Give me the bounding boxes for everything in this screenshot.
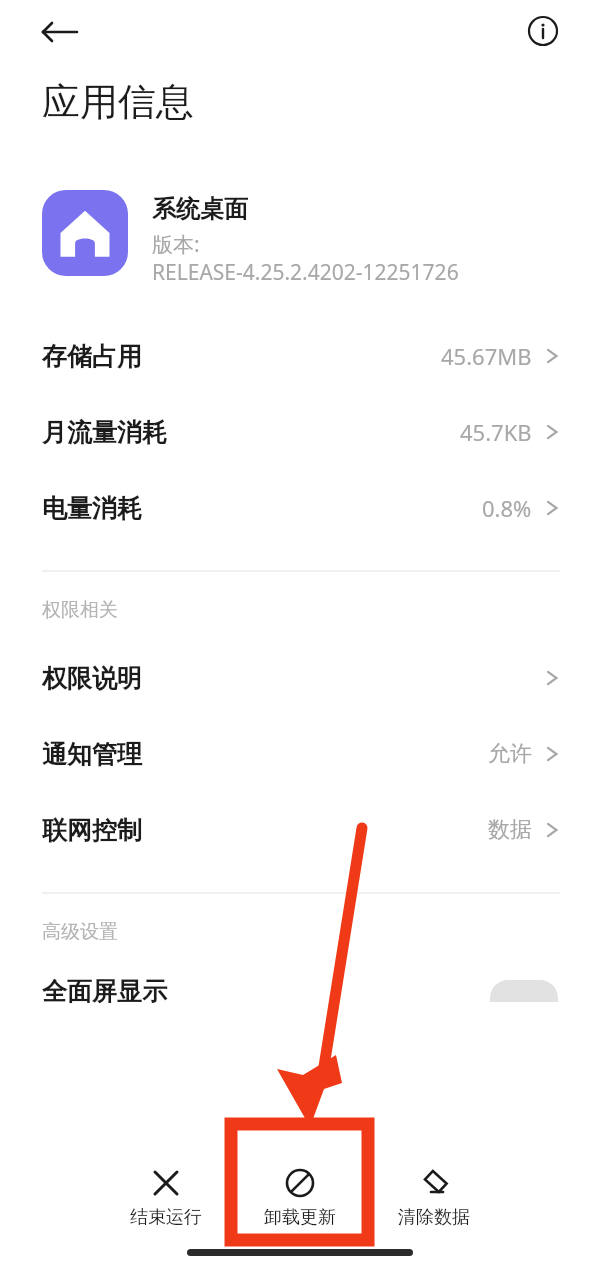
staticText: 联网控制 — [42, 815, 142, 846]
button[interactable]: 清除数据 — [388, 1164, 480, 1233]
staticText: 清除数据 — [398, 1206, 470, 1229]
staticText: 通知管理 — [42, 739, 142, 770]
staticText: 应用信息 — [42, 78, 194, 126]
staticText: 权限相关 — [42, 598, 118, 622]
button[interactable]: 系统桌面 — [42, 190, 558, 286]
button[interactable]: 权限说明 — [0, 640, 600, 716]
staticText: 0.8% — [482, 493, 532, 523]
button[interactable]: 电量消耗 — [0, 470, 600, 546]
button[interactable]: 联网控制 — [0, 792, 600, 868]
staticText: 高级设置 — [42, 920, 118, 944]
staticText: 45.67MB — [441, 341, 532, 371]
staticText: 权限说明 — [42, 663, 142, 694]
staticText: 月流量消耗 — [42, 417, 167, 448]
button[interactable]: 全面屏显示 — [0, 962, 600, 1020]
staticText: 全面屏显示 — [42, 976, 167, 1007]
button[interactable]: 结束运行 — [120, 1164, 212, 1233]
staticText: 卸载更新 — [264, 1206, 336, 1229]
button[interactable]: 月流量消耗 — [0, 394, 600, 470]
button[interactable]: 通知管理 — [0, 716, 600, 792]
button[interactable]: Info — [519, 7, 567, 55]
staticText: 电量消耗 — [42, 493, 142, 524]
button[interactable]: Back — [36, 8, 84, 56]
button[interactable]: 卸载更新 — [254, 1164, 346, 1233]
button[interactable]: 存储占用 — [0, 318, 600, 394]
staticText: 允许 — [488, 740, 532, 768]
staticText: 结束运行 — [130, 1206, 202, 1229]
staticText: 版本: RELEASE-4.25.2.4202-12251726 — [152, 230, 459, 286]
staticText: 存储占用 — [42, 341, 142, 372]
staticText: 数据 — [488, 816, 532, 844]
staticText: 45.7KB — [460, 417, 532, 447]
staticText: 系统桌面 — [152, 194, 248, 224]
